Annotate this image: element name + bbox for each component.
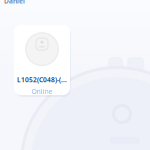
staticText: Online (31, 87, 52, 96)
staticText: Daniel (4, 0, 25, 5)
staticText: L1052(C048)-(... (17, 75, 67, 84)
button[interactable]: L1052(C048)-(... (14, 25, 70, 95)
